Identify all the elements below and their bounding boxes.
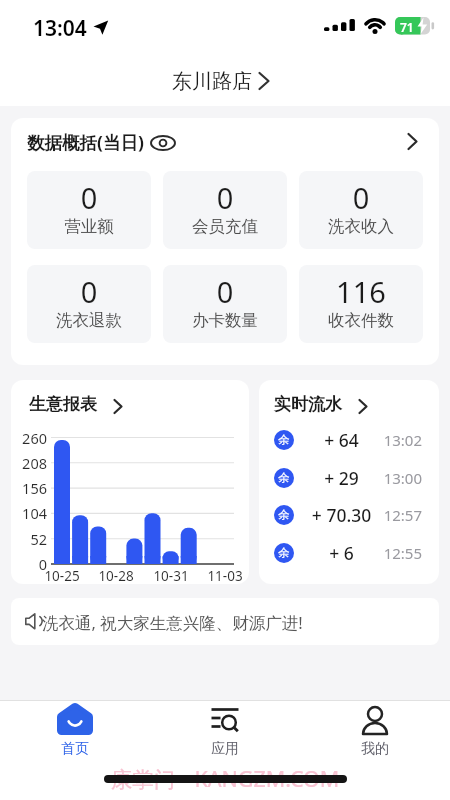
staticText: 会员充值	[163, 216, 287, 237]
staticText: 12:55	[367, 543, 422, 563]
staticText: 13:02	[367, 430, 422, 450]
staticText: 208	[13, 453, 47, 473]
staticText: 52	[13, 529, 47, 549]
staticText: 数据概括(当日)	[27, 130, 144, 154]
button[interactable]: 生意报表	[11, 380, 249, 584]
button[interactable]: 实时流水	[259, 380, 439, 584]
staticText: 余	[274, 433, 294, 447]
staticText: 156	[13, 478, 47, 498]
staticText: 余	[274, 546, 294, 560]
staticText: + 29	[304, 466, 379, 490]
staticText: 营业额	[27, 216, 151, 237]
staticText: + 6	[304, 541, 379, 565]
staticText: 余	[274, 471, 294, 485]
staticText: 10-28	[93, 567, 139, 584]
staticText: 104	[13, 503, 47, 523]
button[interactable]: 数据概括(当日)	[11, 118, 439, 365]
staticText: 实时流水	[274, 394, 342, 415]
staticText: 0	[27, 272, 151, 311]
button[interactable]: 我的	[325, 702, 425, 760]
staticText: 我的	[325, 740, 425, 758]
button[interactable]: 首页	[25, 702, 125, 760]
button[interactable]: 应用	[175, 702, 275, 760]
staticText: 12:57	[367, 505, 422, 525]
staticText: 0	[299, 178, 423, 217]
staticText: 办卡数量	[163, 310, 287, 331]
staticText: 0	[163, 178, 287, 217]
staticText: 东川路店	[172, 69, 252, 94]
staticText: 余	[274, 508, 294, 522]
staticText: 0	[163, 272, 287, 311]
staticText: 洗衣通, 祝大家生意兴隆、财源广进!	[42, 611, 303, 634]
staticText: + 64	[304, 428, 379, 452]
staticText: 13:00	[367, 468, 422, 488]
staticText: 洗衣收入	[299, 216, 423, 237]
staticText: 11-03	[202, 567, 248, 584]
staticText: + 70.30	[304, 503, 379, 527]
button[interactable]	[150, 62, 300, 96]
staticText: 10-31	[148, 567, 194, 584]
staticText: 10-25	[39, 567, 85, 584]
staticText: 生意报表	[29, 394, 97, 415]
staticText: 首页	[25, 740, 125, 758]
staticText: 洗衣退款	[27, 310, 151, 331]
staticText: 116	[299, 272, 423, 311]
staticText: 0	[27, 178, 151, 217]
staticText: 康掌门 • KANGZM.COM	[0, 764, 450, 793]
staticText: 13:04	[33, 14, 87, 43]
staticText: 0	[13, 554, 47, 574]
staticText: 应用	[175, 740, 275, 758]
button[interactable]: 洗衣通, 祝大家生意兴隆、财源广进!	[11, 598, 439, 645]
staticText: 收衣件数	[299, 310, 423, 331]
staticText: 260	[13, 428, 47, 448]
staticText: 71	[400, 19, 414, 35]
